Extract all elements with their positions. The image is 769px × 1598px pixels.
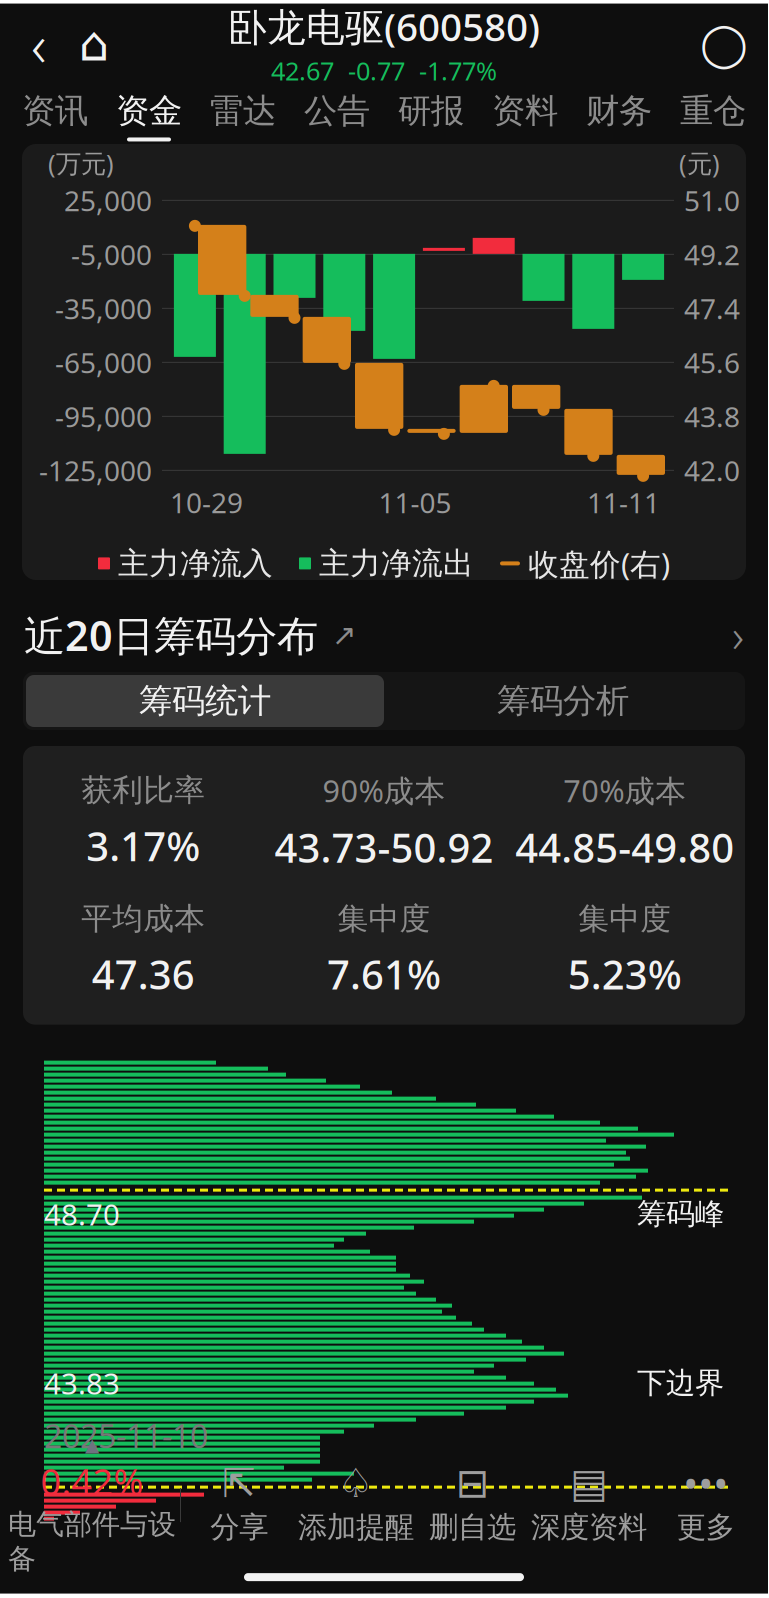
staticText: 更多	[677, 1509, 735, 1545]
staticText: 10-29	[170, 484, 243, 521]
staticText: 下边界	[637, 1365, 724, 1401]
button[interactable]: 筹码统计	[26, 675, 384, 727]
button[interactable]: Home	[66, 14, 122, 74]
staticText: 集中度	[337, 900, 430, 937]
staticText: 45.6	[684, 344, 740, 381]
staticText: ⇱	[222, 1460, 256, 1506]
staticText: 42.67	[271, 54, 334, 87]
button[interactable]: 雷达	[196, 88, 290, 144]
staticText: 筹码分析	[497, 680, 629, 721]
staticText: 分享	[210, 1509, 268, 1545]
staticText: 资料	[492, 90, 558, 131]
staticText: 0.42%	[40, 1457, 143, 1505]
staticText: 51.0	[684, 182, 740, 219]
staticText: 电气部件与设备	[8, 1507, 176, 1576]
staticText: -125,000	[39, 452, 152, 489]
staticText: 2025-11-10	[44, 1415, 208, 1457]
staticText: ◯	[700, 20, 748, 68]
button[interactable]: 筹码分析	[384, 675, 742, 727]
staticText: 47.36	[92, 947, 195, 1001]
staticText: 研报	[398, 90, 464, 131]
button[interactable]: 研报	[384, 88, 478, 144]
staticText: 70%成本	[563, 770, 686, 811]
staticText: 筹码峰	[637, 1196, 724, 1232]
button[interactable]: ▲	[4, 1459, 180, 1551]
staticText: 收盘价(右)	[528, 543, 670, 584]
staticText: 43.83	[44, 1364, 120, 1403]
staticText: 资讯	[22, 90, 88, 131]
button[interactable]: ⇱	[181, 1459, 298, 1551]
staticText: ⊟	[455, 1460, 489, 1506]
staticText: 平均成本	[81, 900, 205, 937]
button[interactable]: ▤	[531, 1459, 647, 1551]
button[interactable]: ⊟	[414, 1459, 531, 1551]
staticText: 筹码统计	[139, 680, 271, 721]
button[interactable]: •••	[647, 1459, 764, 1551]
staticText: 资金	[116, 90, 182, 131]
staticText: -0.77	[348, 54, 405, 87]
staticText: 43.73-50.92	[274, 821, 493, 874]
staticText: 25,000	[64, 182, 152, 219]
button[interactable]: 资讯	[8, 88, 102, 144]
button[interactable]: Search	[692, 14, 756, 74]
staticText: 48.70	[44, 1195, 120, 1234]
staticText: -65,000	[55, 344, 152, 381]
staticText: 集中度	[578, 900, 671, 937]
staticText: 深度资料	[531, 1509, 647, 1545]
staticText: 7.61%	[327, 947, 441, 1001]
staticText: 3.17%	[86, 819, 200, 872]
staticText: ▤	[570, 1460, 608, 1506]
staticText: 获利比率	[81, 771, 205, 809]
staticText: 44.85-49.80	[515, 821, 734, 874]
staticText: 公告	[304, 90, 370, 131]
staticText: ›	[732, 605, 744, 665]
staticText: 47.4	[684, 290, 740, 327]
staticText: -95,000	[55, 398, 152, 435]
staticText: ↗	[332, 618, 357, 652]
staticText: 90%成本	[322, 770, 445, 811]
staticText: -1.77%	[419, 54, 497, 87]
staticText: ♤	[338, 1460, 374, 1506]
staticText: 11-05	[378, 484, 451, 521]
button[interactable]: 公告	[290, 88, 384, 144]
staticText: 主力净流出	[319, 545, 474, 582]
staticText: 49.2	[684, 236, 740, 273]
staticText: -35,000	[55, 290, 152, 327]
button[interactable]: 重仓	[666, 88, 760, 144]
staticText: 卧龙电驱(600580)	[228, 0, 540, 52]
button[interactable]: 资料	[478, 88, 572, 144]
button[interactable]: 近20日筹码分布	[0, 602, 768, 668]
staticText: 近20日筹码分布	[24, 608, 318, 662]
staticText: -5,000	[71, 236, 152, 273]
staticText: 添加提醒	[298, 1509, 414, 1545]
staticText: 主力净流入	[118, 545, 273, 582]
button[interactable]: 资金	[102, 88, 196, 144]
staticText: 11-11	[587, 484, 660, 521]
staticText: 财务	[586, 90, 652, 131]
staticText: 5.23%	[568, 947, 682, 1001]
staticText: ‹	[31, 5, 47, 83]
staticText: ▲	[85, 1434, 99, 1455]
staticText: •••	[683, 1457, 728, 1510]
staticText: (万元)	[48, 146, 114, 180]
button[interactable]: ♤	[298, 1459, 414, 1551]
staticText: 重仓	[680, 90, 746, 131]
button[interactable]: 财务	[572, 88, 666, 144]
staticText: 雷达	[210, 90, 276, 131]
staticText: 删自选	[429, 1509, 516, 1545]
staticText: ⌂	[79, 17, 109, 71]
staticText: 43.8	[684, 398, 740, 435]
button[interactable]: Back	[12, 14, 66, 74]
staticText: (元)	[679, 146, 720, 180]
staticText: 42.0	[684, 452, 740, 489]
